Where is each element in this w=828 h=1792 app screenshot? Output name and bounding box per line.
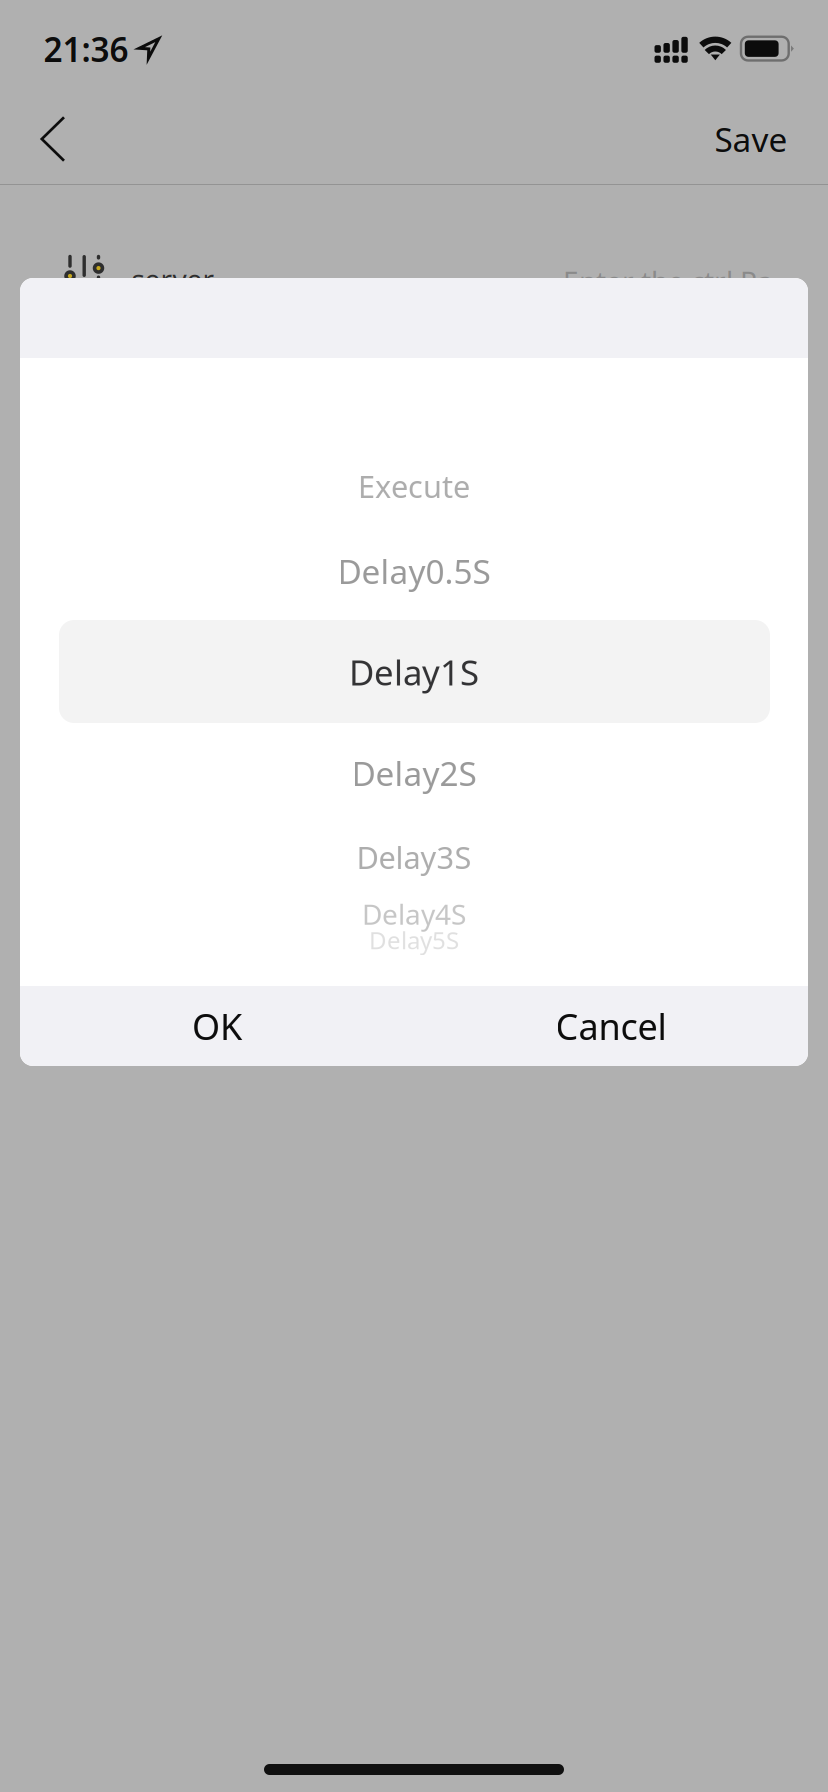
staticText: OK	[192, 1002, 242, 1050]
staticText: Delay0.5S	[337, 549, 490, 593]
button[interactable]: server	[0, 226, 828, 338]
button[interactable]: Delay5S	[58, 898, 769, 982]
button[interactable]: OK	[20, 986, 414, 1066]
staticText: Cancel	[555, 1002, 666, 1050]
staticText: Save	[714, 117, 787, 161]
button[interactable]: Delay0.5S	[58, 529, 769, 613]
staticText: Delay4S	[362, 895, 466, 933]
staticText: server	[131, 260, 214, 298]
button[interactable]: Delay2S	[58, 731, 769, 815]
staticText: Delay5S	[369, 924, 459, 956]
staticText: 21:36	[43, 27, 128, 71]
staticText: Delay1S	[349, 649, 479, 695]
staticText: Delay3S	[356, 837, 471, 877]
button[interactable]: Delay4S	[58, 872, 769, 956]
button[interactable]: Delay3S	[58, 815, 769, 899]
button[interactable]: Execute	[58, 444, 769, 528]
staticText: Execute	[358, 466, 470, 506]
button[interactable]: Save	[698, 99, 804, 179]
staticText: Enter the ctrl Pa	[563, 262, 773, 300]
staticText: Delay2S	[351, 751, 476, 795]
button[interactable]: Delay1S	[58, 630, 769, 714]
button[interactable]: Back	[18, 99, 88, 179]
button[interactable]: Cancel	[414, 986, 808, 1066]
